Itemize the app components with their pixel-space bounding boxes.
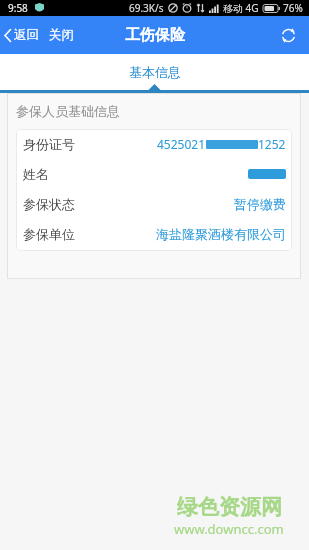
staticText: 参保人员基础信息 [16, 103, 120, 119]
button[interactable]: 身份证号 [16, 129, 292, 159]
staticText: 69.3K/s [129, 1, 164, 15]
staticText: 9:58 [8, 1, 28, 15]
staticText: 姓名 [23, 166, 49, 182]
staticText: 76% [283, 1, 303, 15]
staticText: 4525021 [157, 136, 206, 152]
staticText: 海盐隆聚酒楼有限公司 [156, 226, 286, 242]
staticText: 参保状态 [23, 196, 75, 212]
button[interactable] [280, 27, 296, 43]
staticText: www.downcc.com [174, 520, 284, 538]
button[interactable]: 姓名 [16, 159, 292, 189]
staticText: 返回 [14, 27, 39, 43]
staticText: 关闭 [49, 27, 74, 43]
staticText: 暂停缴费 [234, 196, 286, 212]
button[interactable]: 关闭 [49, 27, 74, 43]
button[interactable]: 参保状态 [16, 189, 292, 219]
staticText: 绿色资源网 [177, 494, 282, 520]
button[interactable]: 参保单位 [16, 219, 292, 249]
staticText: 1252 [258, 136, 286, 152]
staticText: 基本信息 [129, 64, 181, 80]
staticText: 身份证号 [23, 136, 75, 152]
staticText: 参保单位 [23, 226, 75, 242]
staticText: 移动 4G [223, 1, 259, 15]
button[interactable]: 返回 [4, 27, 39, 43]
button[interactable]: 基本信息 [129, 54, 181, 93]
staticText: 工伤保险 [125, 26, 185, 45]
